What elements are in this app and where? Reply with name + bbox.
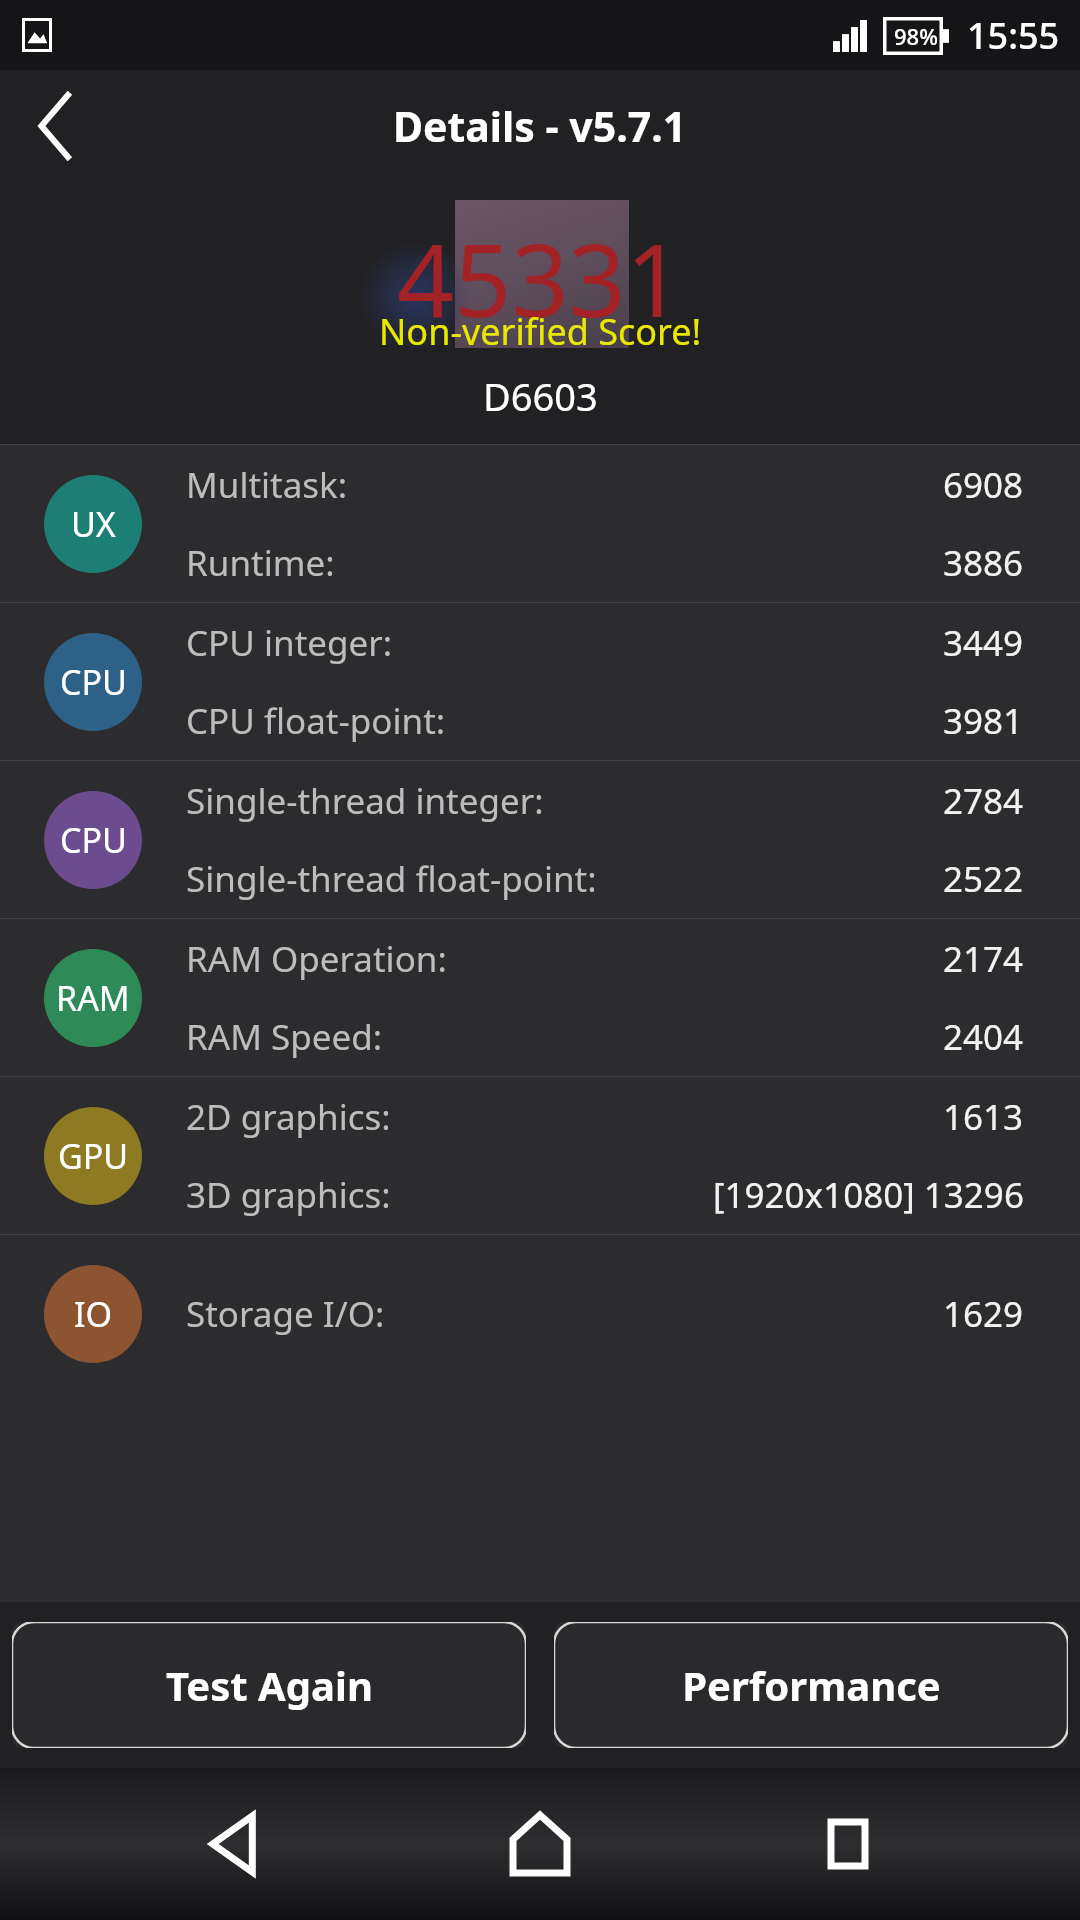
button[interactable]: Performance: [554, 1622, 1068, 1748]
staticText: 15:55: [967, 11, 1060, 60]
staticText: CPU: [60, 659, 127, 705]
staticText: Test Again: [166, 1658, 373, 1712]
button[interactable]: CPU: [0, 761, 1080, 918]
staticText: 1613: [943, 1093, 1024, 1141]
staticText: [1920x1080] 13296: [713, 1171, 1024, 1219]
staticText: Runtime:: [186, 539, 335, 587]
staticText: CPU integer:: [186, 619, 393, 667]
staticText: D6603: [483, 370, 598, 422]
staticText: Non-verified Score!: [379, 307, 702, 356]
staticText: IO: [74, 1291, 113, 1337]
staticText: 6908: [943, 461, 1024, 509]
staticText: CPU float-point:: [186, 697, 446, 745]
staticText: 3449: [943, 619, 1024, 667]
button[interactable]: Back: [0, 71, 110, 181]
staticText: 45331: [397, 210, 683, 346]
staticText: RAM: [56, 975, 130, 1021]
staticText: Single-thread integer:: [186, 777, 544, 825]
staticText: GPU: [58, 1133, 129, 1179]
staticText: RAM Speed:: [186, 1013, 383, 1061]
staticText: 2404: [943, 1013, 1024, 1061]
staticText: Details - v5.7.1: [393, 98, 687, 154]
button[interactable]: IO: [0, 1235, 1080, 1392]
staticText: UX: [71, 501, 116, 547]
button[interactable]: UX: [0, 445, 1080, 602]
staticText: 1629: [943, 1290, 1024, 1338]
staticText: Single-thread float-point:: [186, 855, 597, 903]
button[interactable]: Test Again: [12, 1622, 526, 1748]
staticText: 98%: [894, 21, 938, 51]
button[interactable]: GPU: [0, 1077, 1080, 1234]
staticText: 2174: [943, 935, 1024, 983]
staticText: 3981: [943, 697, 1024, 745]
button[interactable]: Home: [465, 1784, 615, 1904]
staticText: 2522: [943, 855, 1024, 903]
button[interactable]: RAM: [0, 919, 1080, 1076]
staticText: 2D graphics:: [186, 1093, 391, 1141]
staticText: Storage I/O:: [186, 1290, 385, 1338]
button[interactable]: CPU: [0, 603, 1080, 760]
staticText: 3886: [943, 539, 1024, 587]
staticText: Performance: [682, 1658, 941, 1712]
staticText: RAM Operation:: [186, 935, 447, 983]
staticText: 2784: [943, 777, 1024, 825]
staticText: CPU: [60, 817, 127, 863]
button[interactable]: Back: [158, 1784, 308, 1904]
staticText: Multitask:: [186, 461, 348, 509]
button[interactable]: Recent apps: [773, 1784, 923, 1904]
staticText: 3D graphics:: [186, 1171, 391, 1219]
